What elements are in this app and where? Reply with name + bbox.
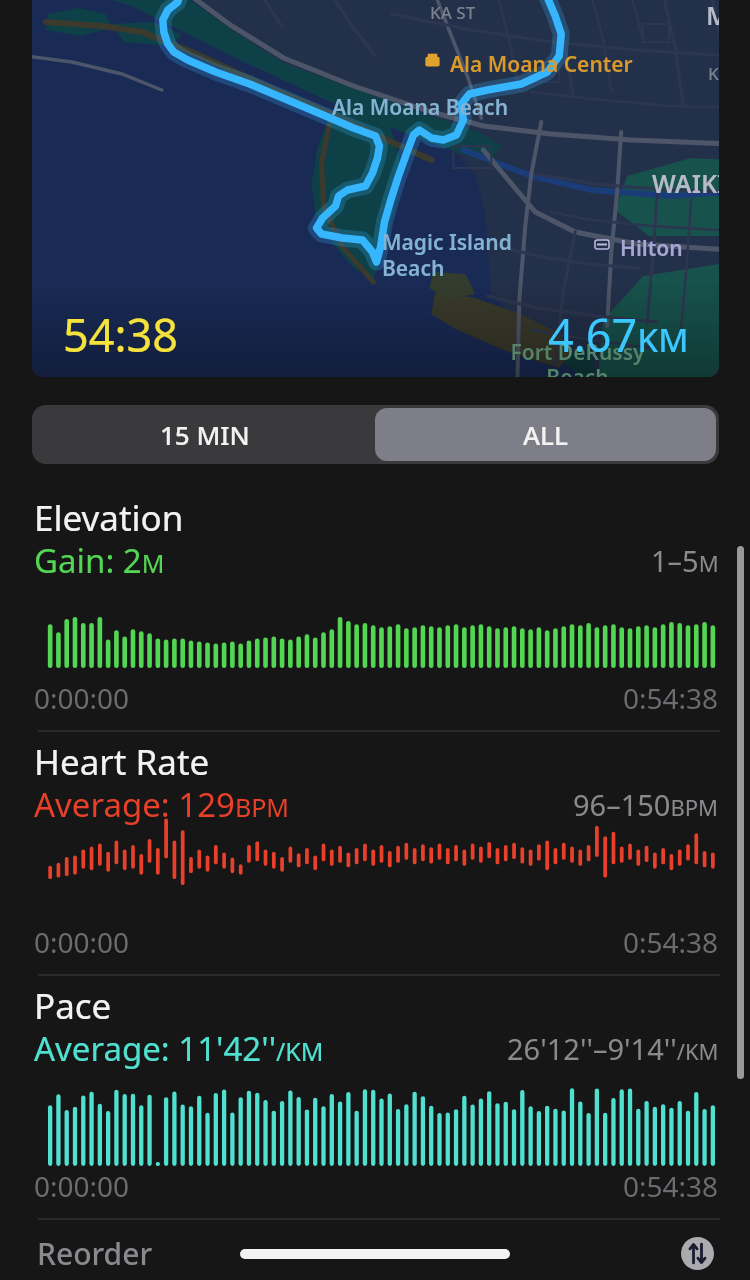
staticText: KAP [708,62,719,85]
staticText: 0:00:00 [34,679,130,717]
staticText: 96–150BPM [573,785,719,824]
button[interactable]: ALL [375,408,716,461]
staticText: Reorder [37,1233,153,1274]
staticText: Average: 129BPM [34,782,289,827]
staticText: Fort DeRussy Beach [510,338,645,377]
staticText: M [706,0,719,32]
staticText: KA ST [430,1,476,24]
staticText: Magic Island Beach [382,228,512,282]
staticText: 54:38 [63,304,179,365]
staticText: 0:54:38 [623,679,719,717]
staticText: 0:00:00 [34,1167,130,1205]
staticText: WAIKIKI [652,166,719,200]
staticText: 1–5M [651,541,719,580]
staticText: 0:54:38 [623,1167,719,1205]
button[interactable]: Ala Moana Center [32,0,719,377]
staticText: Elevation [34,494,184,542]
staticText: 0:54:38 [623,923,719,961]
staticText: 4.67KM [548,304,689,365]
staticText: Ala Moana Beach [332,93,509,122]
staticText: 0:00:00 [34,923,130,961]
staticText: ALL [523,417,568,452]
staticText: Gain: 2M [34,538,165,583]
button[interactable]: Reorder sections [681,1237,714,1270]
staticText: 26'12''–9'14''/KM [507,1029,719,1068]
staticText: Ala Moana Center [450,50,633,79]
button[interactable]: 15 MIN [35,408,375,461]
staticText: Average: 11'42''/KM [34,1026,324,1071]
staticText: Pace [34,982,112,1030]
staticText: 15 MIN [160,417,250,452]
staticText: Heart Rate [34,738,210,786]
staticText: Hilton [620,234,683,263]
